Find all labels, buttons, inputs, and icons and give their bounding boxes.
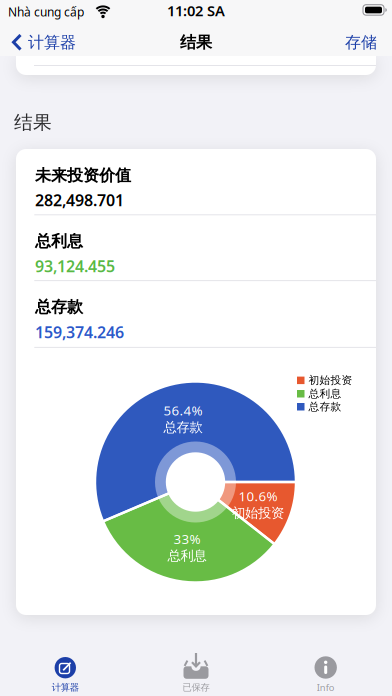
staticText: 总利息 [35,231,83,251]
staticText: 结果 [14,111,52,134]
staticText: 33% [173,530,200,548]
staticText: 56.4% [163,401,202,419]
button[interactable]: 已保存 [151,648,241,696]
button[interactable]: 返回计算器 [12,28,96,56]
staticText: 总利息 [167,548,206,564]
button[interactable]: 存储 [337,28,385,56]
staticText: 总存款 [163,419,202,436]
staticText: 已保存 [182,682,209,693]
staticText: 计算器 [28,33,76,52]
button[interactable]: Info [281,648,371,696]
staticText: 存储 [345,33,377,52]
staticText: 282,498.701 [35,189,124,211]
staticText: Info [317,681,335,694]
staticText: 10.6% [238,487,277,505]
staticText: 总利息 [308,387,341,400]
staticText: 总存款 [35,297,83,317]
staticText: 初始投资 [308,374,352,387]
staticText: 初始投资 [232,505,284,521]
staticText: 未来投资价值 [35,165,131,185]
staticText: 93,124.455 [35,255,115,277]
staticText: 结果 [180,33,212,52]
staticText: 计算器 [52,682,79,693]
staticText: 159,374.246 [35,321,124,343]
button[interactable]: 计算器 [20,648,110,696]
staticText: 总存款 [308,400,341,413]
staticText: 11:02 SA [167,1,225,20]
staticText: Nhà cung cấp [8,4,84,20]
